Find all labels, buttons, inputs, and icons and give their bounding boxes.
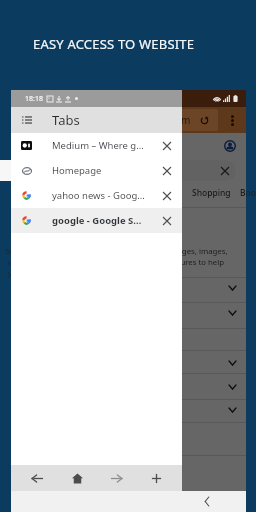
button[interactable]: Back — [24, 465, 50, 491]
button[interactable]: Books — [240, 187, 256, 199]
button[interactable]: google - Google S… — [11, 208, 182, 233]
button[interactable]: Expand — [224, 280, 240, 296]
button[interactable]: Expand — [224, 379, 240, 395]
staticText: 18:18 — [25, 94, 43, 104]
button[interactable]: Expand — [224, 402, 240, 418]
button[interactable]: Home — [64, 465, 90, 491]
button[interactable]: New tab — [143, 465, 169, 491]
button[interactable]: Medium – Where g… — [11, 133, 182, 158]
button[interactable]: Clear search — [218, 164, 232, 178]
button[interactable]: Close tab — [151, 183, 182, 208]
staticText: Tabs — [52, 111, 80, 129]
button[interactable]: Expand — [224, 355, 240, 371]
staticText: Search the world's information, includin… — [5, 246, 240, 257]
button[interactable]: Close tab — [151, 208, 182, 233]
staticText: Medium – Where g… — [52, 139, 151, 152]
button[interactable]: yahoo news - Goog… — [11, 183, 182, 208]
button[interactable]: Back — [195, 491, 219, 512]
staticText: videos and more. Google has many special… — [8, 257, 243, 268]
button[interactable]: Forward — [103, 465, 129, 491]
staticText: medium — [151, 113, 191, 127]
staticText: yahoo news - Goog… — [52, 189, 151, 202]
button[interactable]: Close tab — [151, 133, 182, 158]
button[interactable]: Close tab — [151, 158, 182, 183]
button[interactable]: More options — [218, 107, 246, 133]
button[interactable]: Reload — [196, 112, 212, 128]
staticText: Homepage — [52, 164, 151, 177]
staticText: google - Google S… — [52, 214, 151, 227]
staticText: EASY ACCESS TO WEBSITE — [33, 35, 195, 53]
button[interactable]: Clear search — [0, 160, 236, 181]
button[interactable]: Homepage — [11, 158, 182, 183]
staticText: you find exactly what you're looking for… — [8, 268, 243, 279]
button[interactable]: Shopping — [192, 187, 231, 199]
button[interactable]: Account — [220, 136, 240, 156]
staticText: Books — [240, 187, 256, 199]
button[interactable]: medium — [131, 109, 218, 131]
staticText: Shopping — [192, 187, 231, 199]
button[interactable]: Tabs — [11, 107, 182, 133]
button[interactable]: Expand — [224, 305, 240, 321]
